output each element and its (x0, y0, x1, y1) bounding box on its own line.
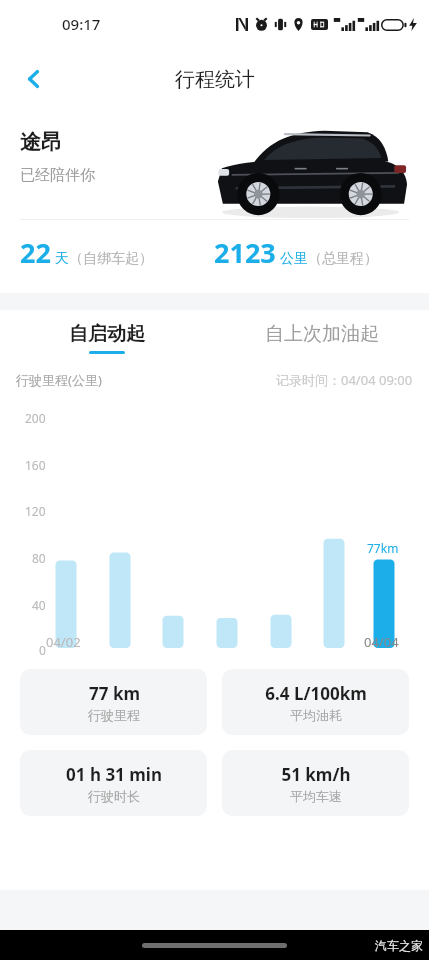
staticText: 行程统计 (175, 67, 255, 92)
button[interactable]: 自上次加油起 (214, 310, 429, 365)
staticText: 51 km/h (281, 763, 351, 786)
staticText: 已经陪伴你 (20, 166, 95, 185)
staticText: 40 (32, 597, 46, 613)
staticText: 22 (20, 234, 51, 271)
staticText: 01 h 31 min (66, 763, 162, 786)
staticText: 天 (55, 250, 69, 268)
staticText: 200 (25, 410, 46, 426)
staticText: 行驶时长 (88, 788, 140, 804)
staticText: 行驶里程(公里) (16, 371, 102, 389)
button[interactable]: 51 km/h (222, 750, 409, 816)
button[interactable]: 77 km (20, 669, 207, 735)
staticText: 记录时间：04/04 09:00 (276, 371, 413, 389)
staticText: 行驶里程 (88, 707, 140, 723)
staticText: 04/04 (364, 633, 399, 651)
staticText: 120 (25, 503, 46, 519)
staticText: 途昂 (20, 129, 62, 155)
staticText: 6.4 L/100km (265, 682, 367, 705)
button[interactable]: 6.4 L/100km (222, 669, 409, 735)
staticText: 自上次加油起 (265, 322, 379, 346)
staticText: （自绑车起） (69, 250, 153, 268)
button[interactable]: 01 h 31 min (20, 750, 207, 816)
staticText: 汽车之家 (375, 938, 423, 953)
staticText: 0 (39, 642, 46, 658)
staticText: 2123 (214, 234, 276, 271)
staticText: 公里 (280, 250, 308, 268)
staticText: 09:17 (62, 14, 101, 34)
button[interactable]: 返回 (10, 55, 58, 103)
staticText: 04/02 (46, 633, 81, 651)
button[interactable]: 自启动起 (0, 310, 214, 365)
staticText: （总里程） (308, 250, 378, 268)
staticText: 平均车速 (290, 788, 342, 804)
staticText: 77 km (89, 682, 140, 705)
staticText: 77km (367, 540, 399, 556)
staticText: 自启动起 (69, 322, 145, 346)
staticText: 80 (32, 550, 46, 566)
staticText: 平均油耗 (290, 707, 342, 723)
staticText: 160 (25, 457, 46, 473)
